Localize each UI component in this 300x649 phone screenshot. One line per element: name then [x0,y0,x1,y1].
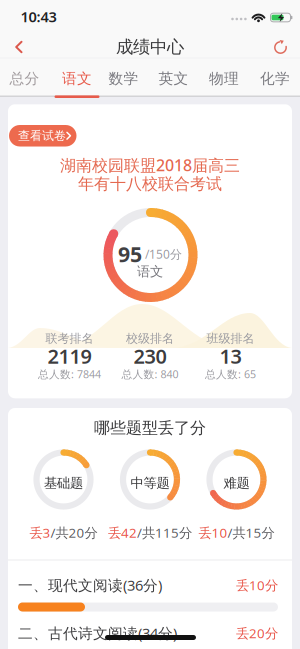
staticText: 13 [219,343,241,369]
staticText: 中等题 [130,475,169,491]
staticText: 丢10 [198,524,227,541]
staticText: 难题 [223,475,249,491]
button[interactable]: 刷新 [265,32,295,62]
button[interactable]: 语文 [53,64,101,94]
staticText: 校级排名 [126,331,174,346]
staticText: /共20分 [50,524,97,541]
staticText: 查看试卷 [18,128,66,143]
staticText: 物理 [209,70,239,88]
staticText: 95 [118,240,142,268]
staticText: 二、古代诗文阅读(34分) [18,623,177,643]
staticText: 英文 [158,70,188,88]
staticText: 湖南校园联盟2018届高三 [60,154,240,176]
staticText: 2119 [47,343,91,369]
button[interactable]: 英文 [149,64,197,94]
staticText: /共115分 [137,524,192,541]
staticText: 总人数: 840 [121,367,178,381]
button[interactable]: 总分 [0,64,48,94]
staticText: /150分 [145,246,182,262]
staticText: 基础题 [44,475,83,491]
button[interactable]: 查看试卷 [9,125,76,146]
staticText: 10:43 [20,7,56,26]
button[interactable]: 返回 [3,32,33,62]
staticText: 语文 [137,263,163,280]
button[interactable]: 数学 [99,64,147,94]
staticText: 总人数: 65 [205,367,256,381]
staticText: 班级排名 [206,331,254,346]
staticText: 化学 [260,70,290,88]
button[interactable]: 化学 [251,64,299,94]
staticText: 一、现代文阅读(36分) [18,575,162,595]
staticText: 语文 [62,70,92,88]
button[interactable]: 一、现代文阅读(36分) [18,575,278,595]
staticText: 哪些题型丢了分 [94,418,206,438]
staticText: 数学 [108,70,138,88]
staticText: 成绩中心 [116,36,184,58]
staticText: 丢10分 [236,576,278,594]
staticText: /共15分 [227,524,274,541]
staticText: 230 [133,343,166,369]
staticText: 总人数: 7844 [38,367,101,381]
staticText: 丢3 [29,524,50,541]
staticText: 联考排名 [45,331,93,346]
staticText: 年有十八校联合考试 [78,174,222,194]
staticText: 丢20分 [236,624,278,642]
button[interactable]: 物理 [200,64,248,94]
button[interactable]: 二、古代诗文阅读(34分) [18,623,278,643]
staticText: 丢42 [108,524,137,541]
staticText: 总分 [9,70,39,88]
